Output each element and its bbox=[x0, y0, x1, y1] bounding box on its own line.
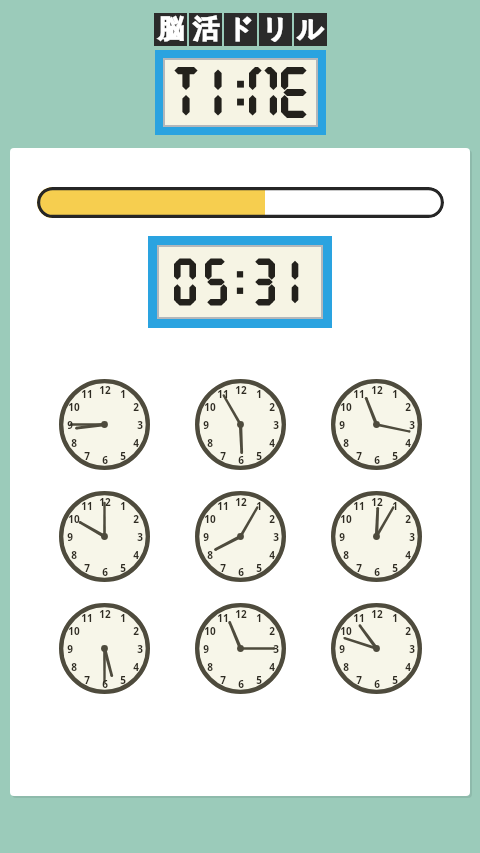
staticText: 8 bbox=[207, 660, 213, 674]
staticText: 8 bbox=[343, 660, 349, 674]
staticText: 3 bbox=[409, 418, 415, 432]
staticText: 9 bbox=[203, 530, 209, 544]
staticText: 7 bbox=[84, 561, 90, 575]
staticText: 4 bbox=[269, 436, 275, 450]
button[interactable]: Clock showing 10:48 bbox=[308, 603, 444, 694]
staticText: 7 bbox=[356, 673, 362, 687]
staticText: 9 bbox=[339, 642, 345, 656]
staticText: 7 bbox=[356, 561, 362, 575]
staticText: 5 bbox=[256, 673, 262, 687]
staticText: 5 bbox=[392, 673, 398, 687]
staticText: 1 bbox=[392, 387, 398, 401]
staticText: 3 bbox=[273, 642, 279, 656]
staticText: 脳 bbox=[158, 13, 184, 46]
staticText: 2 bbox=[133, 624, 139, 638]
staticText: 1 bbox=[256, 611, 262, 625]
staticText: 6 bbox=[238, 453, 244, 467]
staticText: 10 bbox=[68, 512, 80, 526]
button[interactable]: Clock showing 11:17 bbox=[308, 379, 444, 470]
staticText: 12 bbox=[235, 495, 247, 509]
button[interactable]: Clock showing 10:0 bbox=[36, 491, 172, 582]
staticText: 2 bbox=[269, 512, 275, 526]
staticText: 6 bbox=[238, 565, 244, 579]
staticText: ド bbox=[227, 13, 254, 46]
staticText: 2 bbox=[269, 400, 275, 414]
staticText: 10 bbox=[204, 400, 216, 414]
staticText: 12 bbox=[99, 383, 111, 397]
staticText: 10 bbox=[340, 400, 352, 414]
staticText: 4 bbox=[405, 436, 411, 450]
staticText: 6 bbox=[102, 565, 108, 579]
staticText: 4 bbox=[269, 548, 275, 562]
staticText: 6 bbox=[102, 677, 108, 691]
staticText: 6 bbox=[238, 677, 244, 691]
button[interactable] bbox=[37, 187, 444, 218]
staticText: 11 bbox=[353, 387, 365, 401]
staticText: 2 bbox=[405, 624, 411, 638]
staticText: 8 bbox=[207, 436, 213, 450]
staticText: 9 bbox=[339, 418, 345, 432]
staticText: 9 bbox=[339, 530, 345, 544]
staticText: 7 bbox=[84, 673, 90, 687]
staticText: 1 bbox=[256, 499, 262, 513]
staticText: リ bbox=[262, 13, 289, 46]
staticText: 8 bbox=[71, 548, 77, 562]
staticText: 9 bbox=[203, 642, 209, 656]
staticText: 10 bbox=[204, 512, 216, 526]
staticText: 活 bbox=[193, 13, 219, 46]
staticText: 10 bbox=[68, 400, 80, 414]
staticText: 11 bbox=[353, 499, 365, 513]
staticText: 6 bbox=[374, 677, 380, 691]
staticText: 3 bbox=[409, 642, 415, 656]
button[interactable]: Clock showing 8:5 bbox=[172, 491, 308, 582]
staticText: 9 bbox=[203, 418, 209, 432]
staticText: 5 bbox=[120, 561, 126, 575]
staticText: 12 bbox=[371, 607, 383, 621]
staticText: 1 bbox=[120, 611, 126, 625]
button[interactable]: Clock showing 8:45 bbox=[36, 379, 172, 470]
staticText: 8 bbox=[343, 436, 349, 450]
staticText: 1 bbox=[256, 387, 262, 401]
staticText: 4 bbox=[405, 660, 411, 674]
staticText: 9 bbox=[67, 530, 73, 544]
staticText: 9 bbox=[67, 418, 73, 432]
button[interactable]: Clock showing 5:55 bbox=[172, 379, 308, 470]
staticText: 7 bbox=[220, 673, 226, 687]
button[interactable]: Clock showing 11:15 bbox=[172, 603, 308, 694]
staticText: 11 bbox=[353, 611, 365, 625]
staticText: 3 bbox=[137, 418, 143, 432]
staticText: 2 bbox=[405, 512, 411, 526]
staticText: 4 bbox=[405, 548, 411, 562]
staticText: 3 bbox=[273, 418, 279, 432]
staticText: 3 bbox=[137, 642, 143, 656]
staticText: 11 bbox=[81, 611, 93, 625]
staticText: 10 bbox=[340, 624, 352, 638]
staticText: 4 bbox=[133, 660, 139, 674]
staticText: 12 bbox=[99, 607, 111, 621]
staticText: 7 bbox=[220, 561, 226, 575]
staticText: 4 bbox=[269, 660, 275, 674]
button[interactable]: Clock showing 12:5 bbox=[308, 491, 444, 582]
staticText: 2 bbox=[269, 624, 275, 638]
staticText: 2 bbox=[405, 400, 411, 414]
staticText: 10 bbox=[204, 624, 216, 638]
button[interactable]: Clock showing 5:30 bbox=[36, 603, 172, 694]
staticText: 5 bbox=[256, 449, 262, 463]
staticText: 1 bbox=[120, 499, 126, 513]
staticText: 11 bbox=[217, 499, 229, 513]
staticText: 12 bbox=[235, 383, 247, 397]
staticText: 1 bbox=[120, 387, 126, 401]
staticText: 12 bbox=[371, 383, 383, 397]
staticText: 1 bbox=[392, 499, 398, 513]
staticText: 11 bbox=[217, 387, 229, 401]
staticText: 1 bbox=[392, 611, 398, 625]
staticText: 8 bbox=[207, 548, 213, 562]
staticText: 3 bbox=[273, 530, 279, 544]
staticText: 6 bbox=[374, 453, 380, 467]
staticText: 7 bbox=[356, 449, 362, 463]
staticText: 8 bbox=[71, 436, 77, 450]
staticText: 11 bbox=[81, 499, 93, 513]
staticText: 7 bbox=[220, 449, 226, 463]
staticText: 3 bbox=[137, 530, 143, 544]
staticText: 5 bbox=[256, 561, 262, 575]
